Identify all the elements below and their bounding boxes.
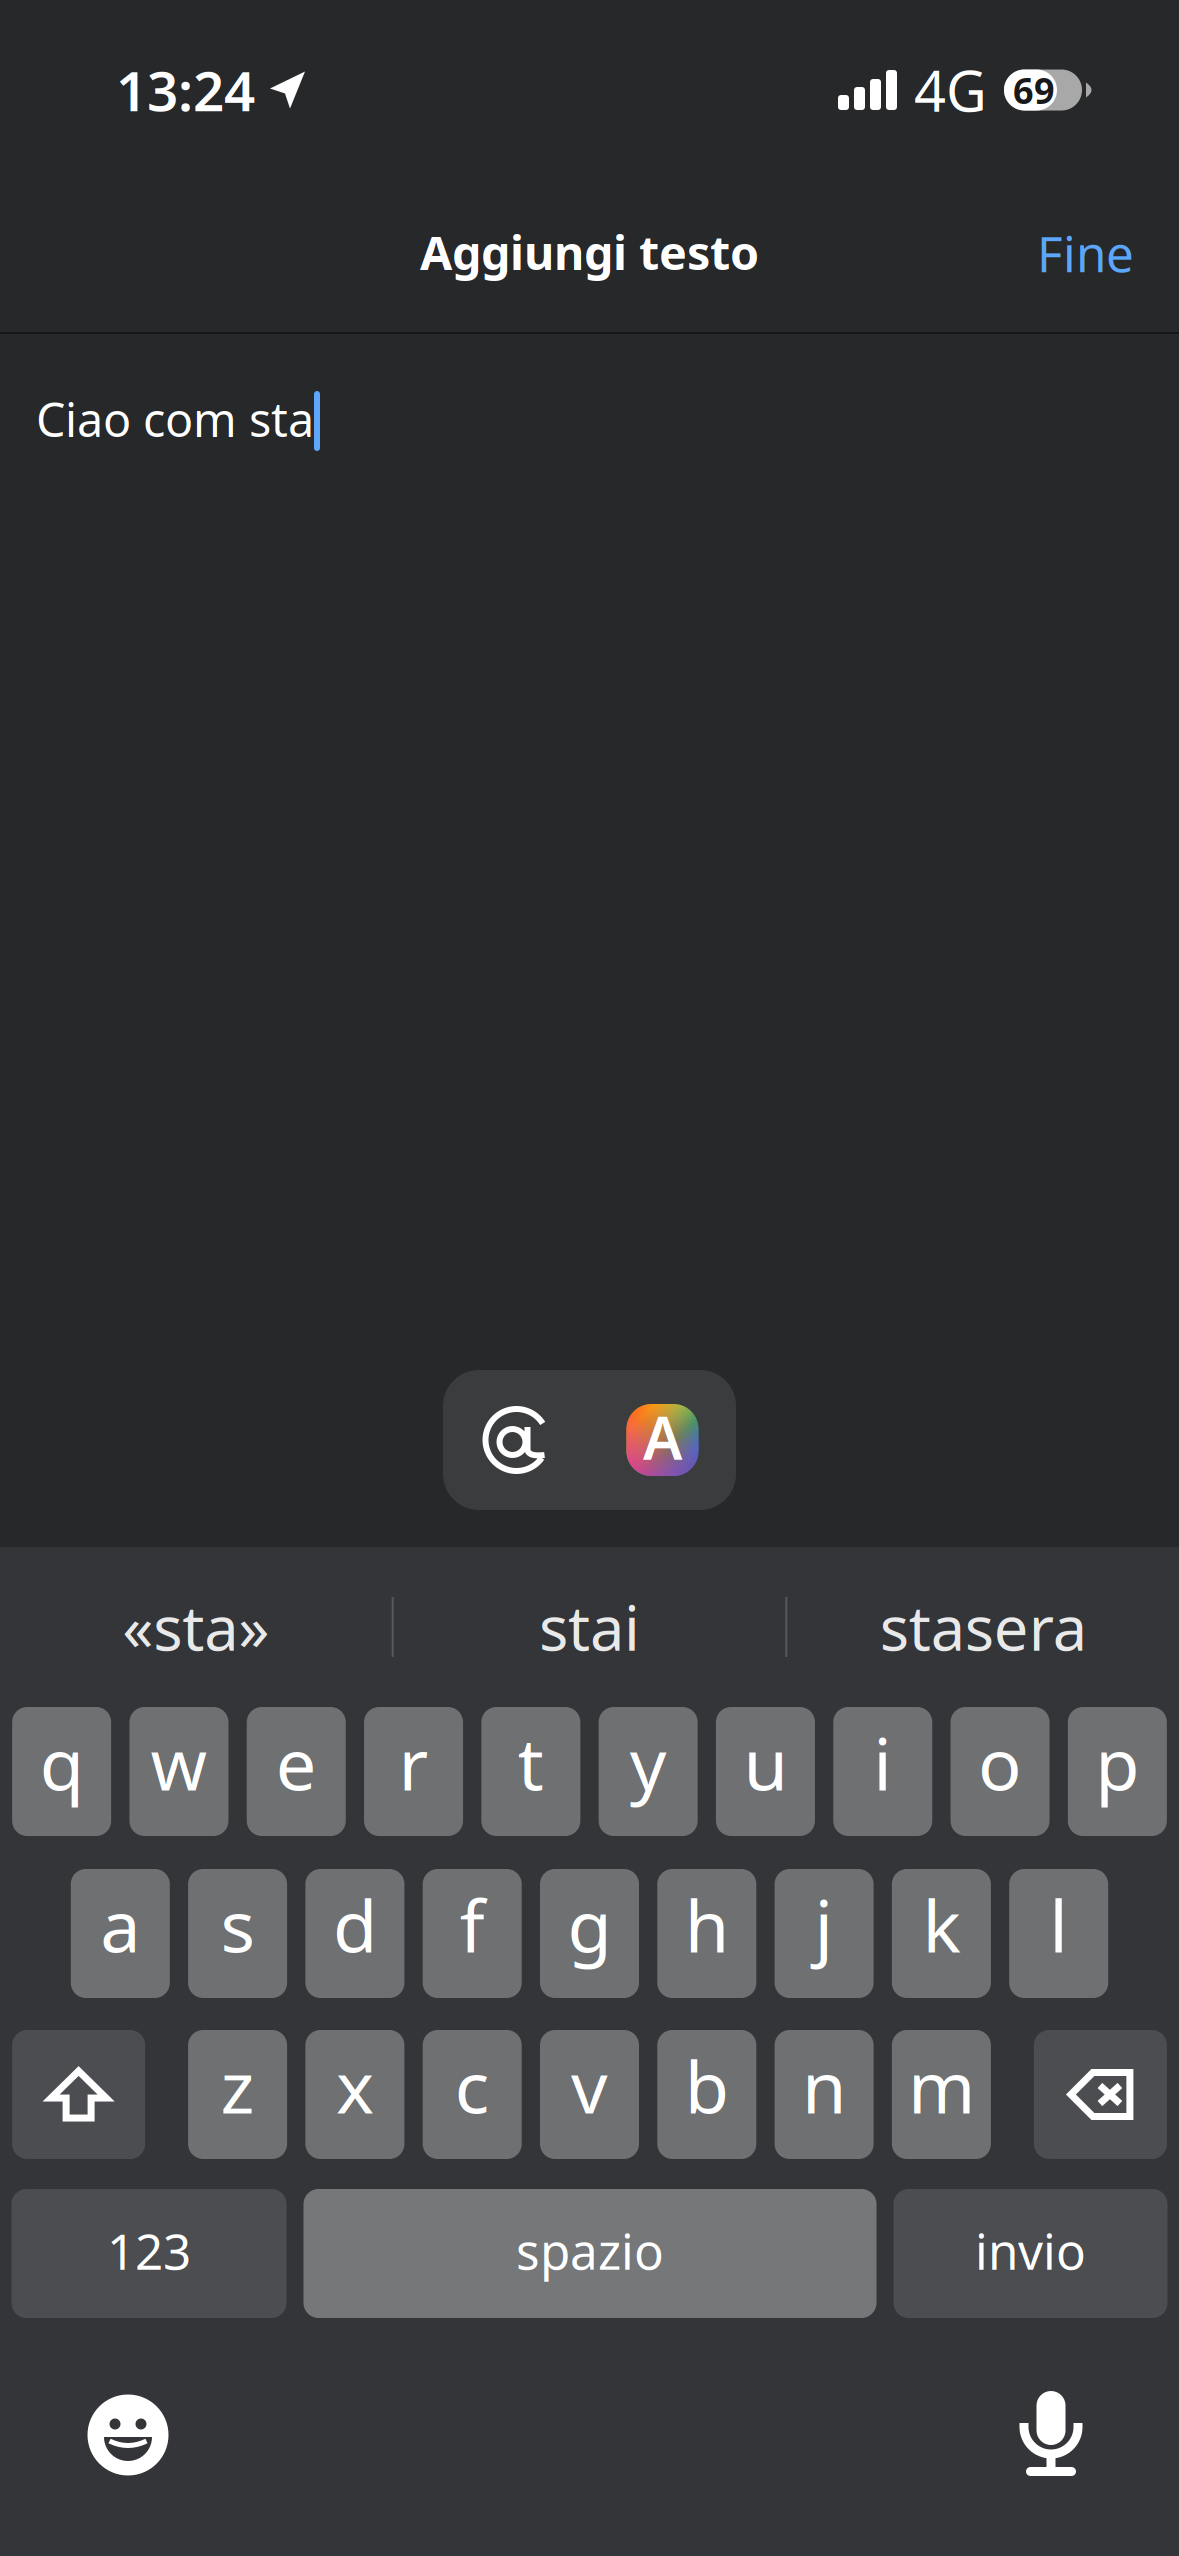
button[interactable]: stai [394,1547,785,1707]
button[interactable]: invio [893,2189,1167,2318]
button[interactable]: m [892,2030,991,2159]
staticText: y [630,1715,667,1810]
button[interactable]: i [833,1707,932,1836]
staticText: stasera [880,1586,1087,1668]
staticText: t [518,1715,544,1810]
staticText: w [150,1715,207,1810]
button[interactable]: s [188,1869,287,1998]
button[interactable]: Fine [1037,204,1179,310]
staticText: n [802,2038,846,2133]
button[interactable]: h [657,1869,756,1998]
staticText: 123 [107,2218,191,2283]
button[interactable]: k [892,1869,991,1998]
button[interactable]: v [540,2030,639,2159]
button[interactable]: x [305,2030,404,2159]
staticText: 13:24 [116,54,255,126]
staticText: Fine [1037,220,1134,286]
staticText: 69 [1013,66,1055,114]
staticText: h [685,1877,729,1972]
button[interactable]: a [71,1869,170,1998]
button[interactable]: b [657,2030,756,2159]
button[interactable]: spazio [303,2189,876,2318]
staticText: j [815,1877,834,1972]
button[interactable]: l [1009,1869,1108,1998]
button[interactable]: f [423,1869,522,1998]
button[interactable]: Emoji keyboard [66,2373,190,2497]
staticText: c [455,2038,490,2133]
staticText: 4G [914,53,987,127]
staticText: A [643,1398,682,1476]
staticText: m [908,2038,975,2133]
button[interactable]: o [950,1707,1049,1836]
staticText: s [221,1877,255,1972]
button[interactable]: g [540,1869,639,1998]
staticText: f [460,1877,485,1972]
staticText: a [100,1877,140,1972]
staticText: k [922,1877,960,1972]
button[interactable]: «sta» [0,1547,392,1707]
button[interactable]: j [775,1869,874,1998]
staticText: u [743,1715,787,1810]
staticText: v [571,2038,608,2133]
button[interactable]: Dictation [989,2373,1113,2497]
button[interactable]: p [1068,1707,1167,1836]
staticText: stai [539,1586,640,1668]
staticText: i [873,1715,892,1810]
staticText: r [398,1715,428,1810]
staticText: e [276,1715,317,1810]
button[interactable]: z [188,2030,287,2159]
button[interactable]: Shift [12,2030,145,2159]
staticText: b [685,2038,729,2133]
button[interactable]: 123 [11,2189,286,2318]
button[interactable]: n [775,2030,874,2159]
button[interactable]: u [716,1707,815,1836]
staticText: q [40,1715,84,1810]
staticText: Aggiungi testo [420,221,759,283]
staticText: g [567,1877,611,1972]
button[interactable]: Delete [1034,2030,1167,2159]
staticText: l [1049,1877,1068,1972]
button[interactable]: d [305,1869,404,1998]
button[interactable]: Mention [443,1370,589,1510]
button[interactable]: c [423,2030,522,2159]
staticText: d [333,1877,377,1972]
staticText: invio [975,2218,1086,2283]
staticText: spazio [516,2218,664,2283]
button[interactable]: y [599,1707,698,1836]
staticText: Ciao com sta [36,388,314,450]
button[interactable]: w [129,1707,228,1836]
staticText: «sta» [122,1586,269,1668]
button[interactable]: e [247,1707,346,1836]
button[interactable]: stasera [787,1547,1179,1707]
button[interactable]: q [12,1707,111,1836]
button[interactable]: r [364,1707,463,1836]
staticText: x [336,2038,374,2133]
button[interactable]: Writing Tools [589,1370,735,1510]
staticText: p [1095,1715,1139,1810]
staticText: z [221,2038,255,2133]
button[interactable]: t [481,1707,580,1836]
staticText: o [978,1715,1022,1810]
